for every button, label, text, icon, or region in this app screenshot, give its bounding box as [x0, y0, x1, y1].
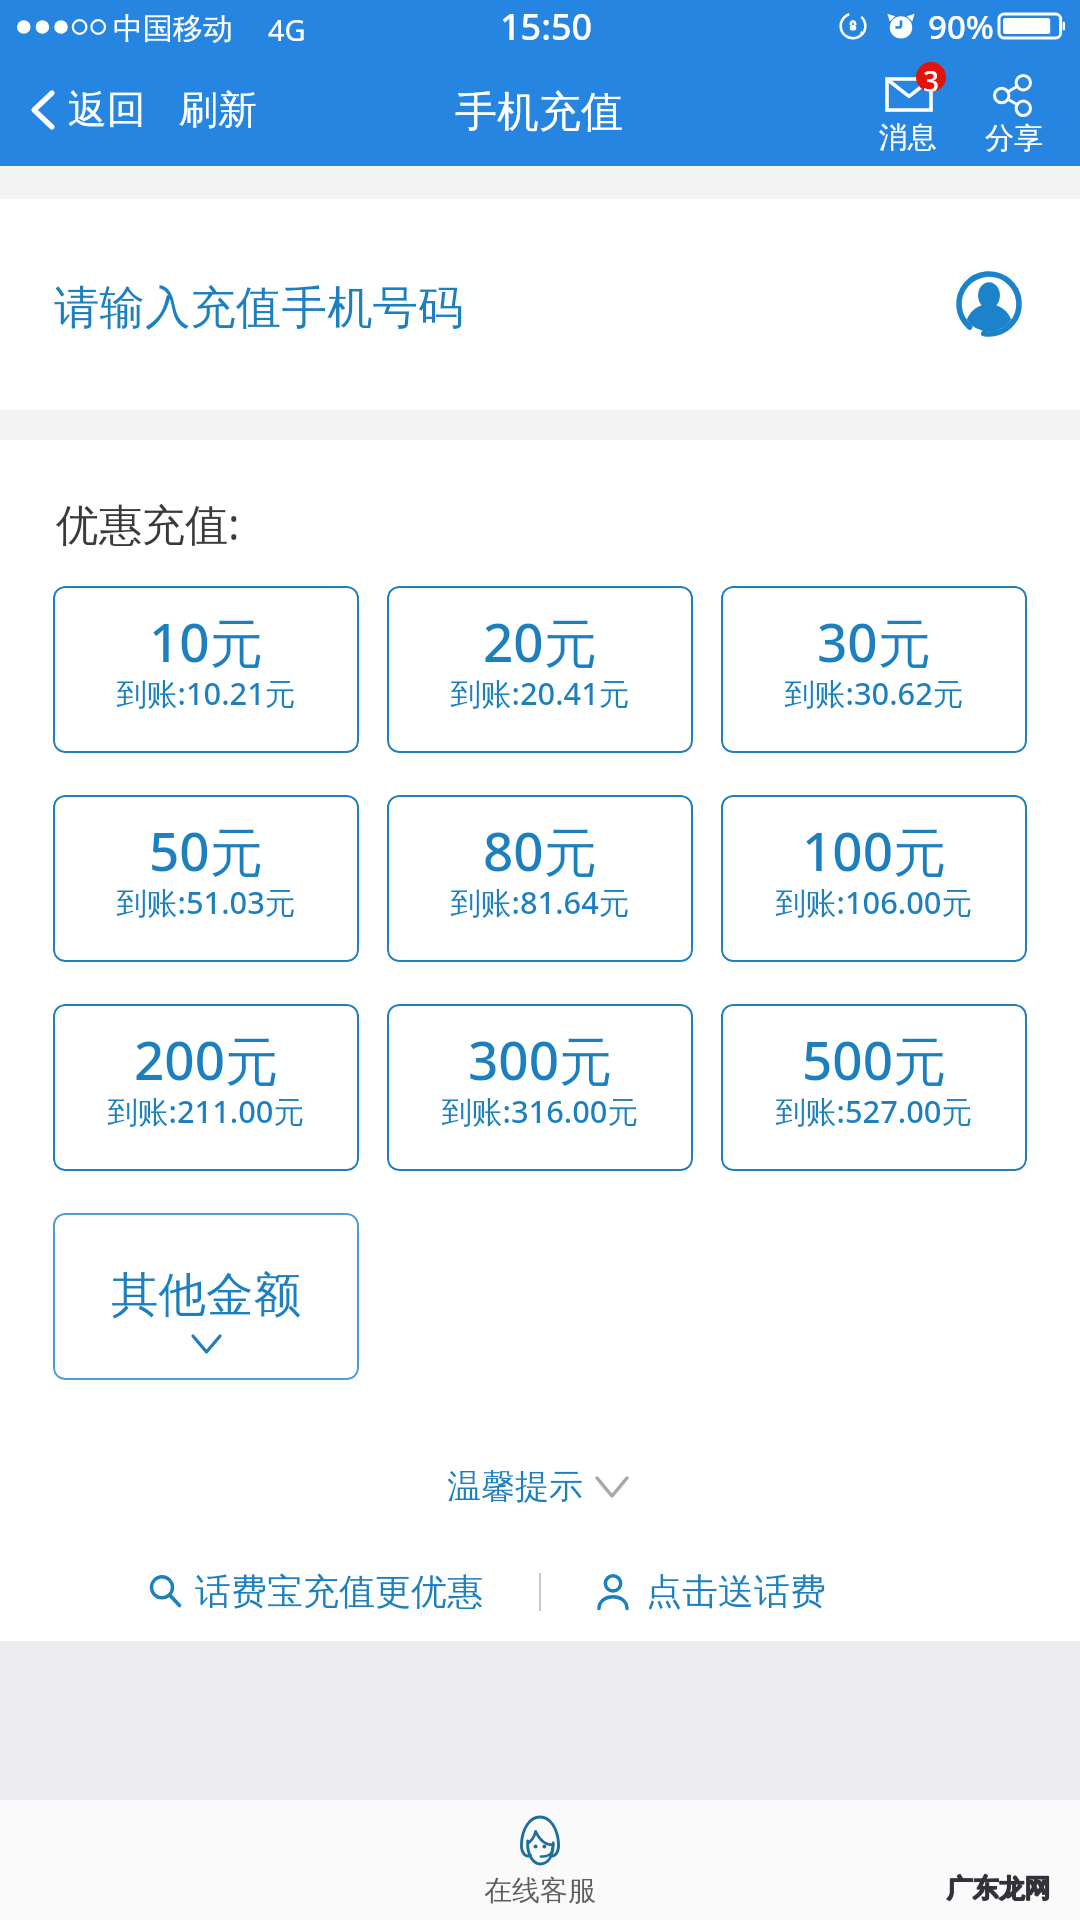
button[interactable]: 20元 [387, 586, 693, 753]
button[interactable]: 点击送话费 [597, 1559, 826, 1624]
button[interactable]: 话费宝充值更优惠 [148, 1559, 483, 1624]
button[interactable]: 10元 [53, 586, 359, 753]
button[interactable]: 50元 [53, 795, 359, 962]
staticText: 到账:51.03元 [116, 881, 296, 923]
staticText: 到账:10.21元 [116, 672, 296, 714]
staticText: 3 [923, 62, 940, 92]
staticText: 50元 [149, 814, 263, 886]
button[interactable]: 30元 [721, 586, 1027, 753]
staticText: 500元 [802, 1023, 946, 1095]
staticText: 消息 [879, 119, 937, 156]
button[interactable]: 温馨提示 [441, 1457, 633, 1516]
button[interactable]: 在线客服 [454, 1815, 626, 1908]
button[interactable]: 分享 [972, 68, 1056, 158]
staticText: 广东龙网 [947, 1872, 1051, 1905]
staticText: 到账:527.00元 [775, 1090, 973, 1132]
staticText: 4G [268, 10, 306, 49]
button[interactable]: 200元 [53, 1004, 359, 1171]
staticText: 30元 [817, 605, 931, 677]
staticText: 200元 [134, 1023, 278, 1095]
staticText: 15:50 [500, 2, 593, 51]
button[interactable]: 返回 [22, 77, 156, 142]
button[interactable]: 300元 [387, 1004, 693, 1171]
button[interactable]: 选择联系人 [956, 271, 1022, 337]
staticText: 广东龙网 [947, 1873, 1051, 1906]
staticText: 100元 [802, 814, 946, 886]
staticText: 返回 [68, 85, 146, 134]
button[interactable]: 100元 [721, 795, 1027, 962]
staticText: 到账:81.64元 [450, 881, 630, 923]
staticText: 其他金额 [111, 1265, 301, 1325]
staticText: 点击送话费 [646, 1569, 826, 1614]
staticText: 20元 [483, 605, 597, 677]
staticText: 分享 [985, 120, 1043, 157]
staticText: 在线客服 [484, 1873, 596, 1908]
staticText: 10元 [149, 605, 263, 677]
staticText: 话费宝充值更优惠 [195, 1569, 483, 1614]
staticText: 广东龙网 [946, 1873, 1050, 1906]
staticText: 90% [928, 4, 994, 49]
staticText: 请输入充值手机号码 [54, 279, 464, 336]
staticText: 到账:316.00元 [441, 1090, 639, 1132]
button[interactable]: 80元 [387, 795, 693, 962]
button[interactable]: 3 [866, 68, 950, 158]
staticText: 到账:20.41元 [450, 672, 630, 714]
staticText: 优惠充值: [56, 494, 240, 553]
staticText: 到账:211.00元 [107, 1090, 305, 1132]
staticText: 到账:30.62元 [784, 672, 964, 714]
staticText: 温馨提示 [447, 1465, 583, 1508]
button[interactable]: 请输入充值手机号码 [0, 199, 1080, 410]
button[interactable]: 其他金额 [53, 1213, 359, 1380]
staticText: 手机充值 [455, 86, 623, 139]
staticText: 80元 [483, 814, 597, 886]
staticText: 300元 [468, 1023, 612, 1095]
staticText: 中国移动 [113, 10, 233, 48]
button[interactable]: 刷新 [175, 79, 261, 140]
staticText: 到账:106.00元 [775, 881, 973, 923]
staticText: 广东龙网 [946, 1872, 1050, 1905]
button[interactable]: 500元 [721, 1004, 1027, 1171]
